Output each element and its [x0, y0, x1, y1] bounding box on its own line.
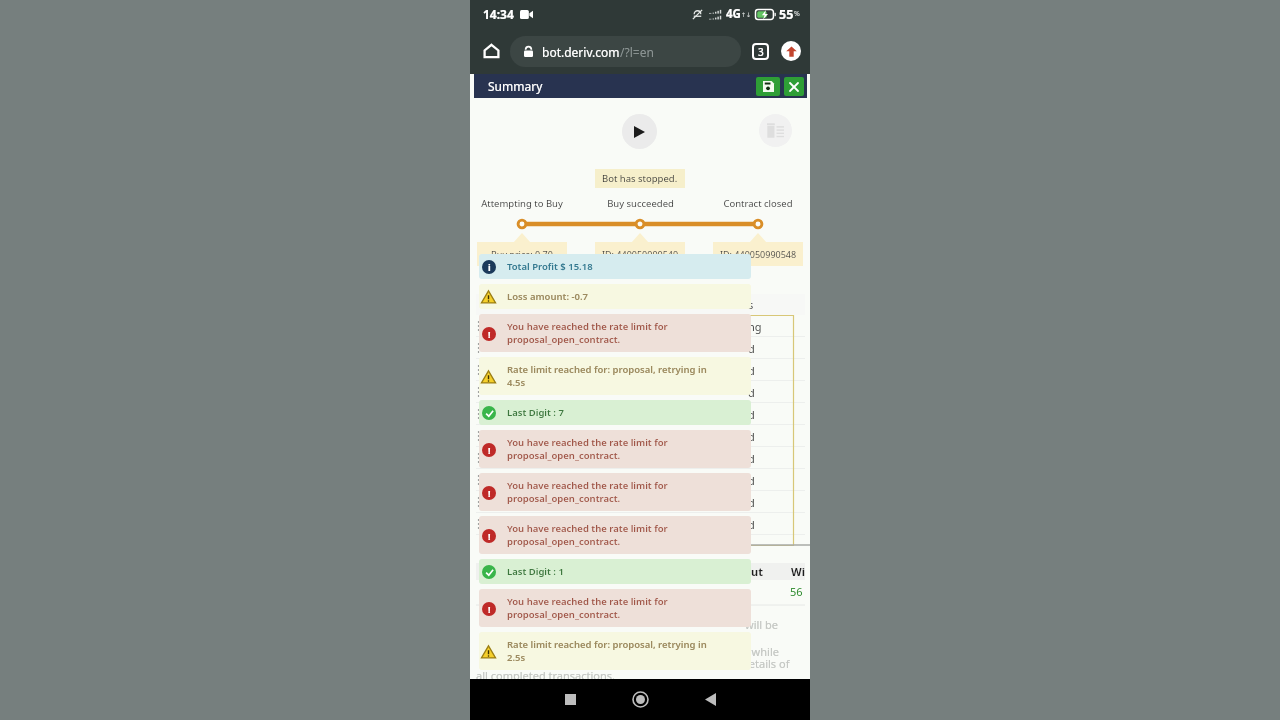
button[interactable]: bot.deriv.com	[510, 36, 741, 67]
button[interactable]: Last Digit : 1	[479, 559, 751, 584]
button[interactable]: Home	[618, 679, 662, 720]
button[interactable]: !	[479, 589, 751, 627]
staticText: /?l=en	[620, 44, 654, 60]
staticText: i	[488, 261, 491, 273]
staticText: Buy price: 0.70	[491, 248, 553, 260]
staticText: Bot has stopped.	[602, 172, 678, 185]
button[interactable]: Clear transactions	[759, 114, 792, 147]
staticText: Contract closed	[723, 197, 793, 210]
button[interactable]: Run bot	[622, 114, 657, 149]
button[interactable]: Recent apps	[548, 679, 592, 720]
staticText: 3	[758, 45, 764, 59]
button[interactable]: i	[479, 254, 751, 279]
staticText: d while	[742, 644, 779, 659]
staticText: You have reached the rate limit for prop…	[507, 522, 668, 548]
staticText: Rate limit reached for: proposal, retryi…	[507, 638, 707, 664]
staticText: Summary	[488, 78, 543, 94]
staticText: You have reached the rate limit for prop…	[507, 479, 668, 505]
button[interactable]: Close	[784, 77, 804, 96]
staticText: Last Digit : 1	[507, 565, 564, 578]
staticText: !	[488, 328, 491, 340]
staticText: d	[748, 341, 755, 356]
staticText: !	[488, 530, 491, 542]
staticText: Loss amount: -0.7	[507, 290, 589, 303]
staticText: 4G	[726, 6, 741, 22]
button[interactable]: Rate limit reached for: proposal, retryi…	[479, 357, 751, 395]
staticText: d	[748, 473, 755, 488]
staticText: You have reached the rate limit for prop…	[507, 595, 668, 621]
staticText: You have reached the rate limit for prop…	[507, 436, 668, 462]
staticText: ng	[748, 319, 762, 334]
staticText: s	[748, 297, 754, 312]
staticText: Last Digit : 7	[507, 406, 564, 419]
staticText: d	[748, 363, 755, 378]
staticText: Rate limit reached for: proposal, retryi…	[507, 363, 707, 389]
staticText: ut	[751, 564, 763, 579]
staticText: !	[488, 603, 491, 615]
button[interactable]: Home	[478, 38, 504, 64]
staticText: all completed transactions.	[476, 668, 615, 683]
button[interactable]: Update available	[781, 41, 801, 61]
staticText: !	[488, 444, 491, 456]
staticText: Wi	[791, 564, 805, 579]
staticText: %	[794, 9, 800, 19]
staticText: Buy succeeded	[607, 197, 674, 210]
button[interactable]: !	[479, 516, 751, 554]
staticText: ID: 449050990549	[602, 248, 679, 260]
staticText: d	[748, 407, 755, 422]
button[interactable]: !	[479, 430, 751, 468]
staticText: ID: 449050990548	[720, 248, 797, 260]
staticText: Total Profit $ 15.18	[507, 260, 593, 273]
staticText: bot.deriv.com	[542, 44, 620, 60]
button[interactable]: !	[479, 473, 751, 511]
staticText: ↑↓	[741, 11, 752, 18]
staticText: !	[488, 487, 491, 499]
staticText: d	[748, 451, 755, 466]
staticText: d	[748, 385, 755, 400]
button[interactable]: Rate limit reached for: proposal, retryi…	[479, 632, 751, 670]
staticText: d	[748, 517, 755, 532]
staticText: will be	[745, 617, 778, 632]
staticText: or details of	[728, 656, 790, 671]
staticText: You have reached the rate limit for prop…	[507, 320, 668, 346]
staticText: 56	[790, 584, 803, 599]
button[interactable]: Tabs	[752, 43, 769, 60]
button[interactable]: !	[479, 314, 751, 352]
staticText: d	[748, 495, 755, 510]
button[interactable]: Save	[756, 77, 780, 96]
staticText: d	[748, 429, 755, 444]
staticText: 14:34	[483, 6, 514, 22]
staticText: Attempting to Buy	[481, 197, 563, 210]
staticText: 55	[779, 6, 794, 23]
button[interactable]: Back	[688, 679, 732, 720]
button[interactable]: Last Digit : 7	[479, 400, 751, 425]
button[interactable]: Loss amount: -0.7	[479, 284, 751, 309]
